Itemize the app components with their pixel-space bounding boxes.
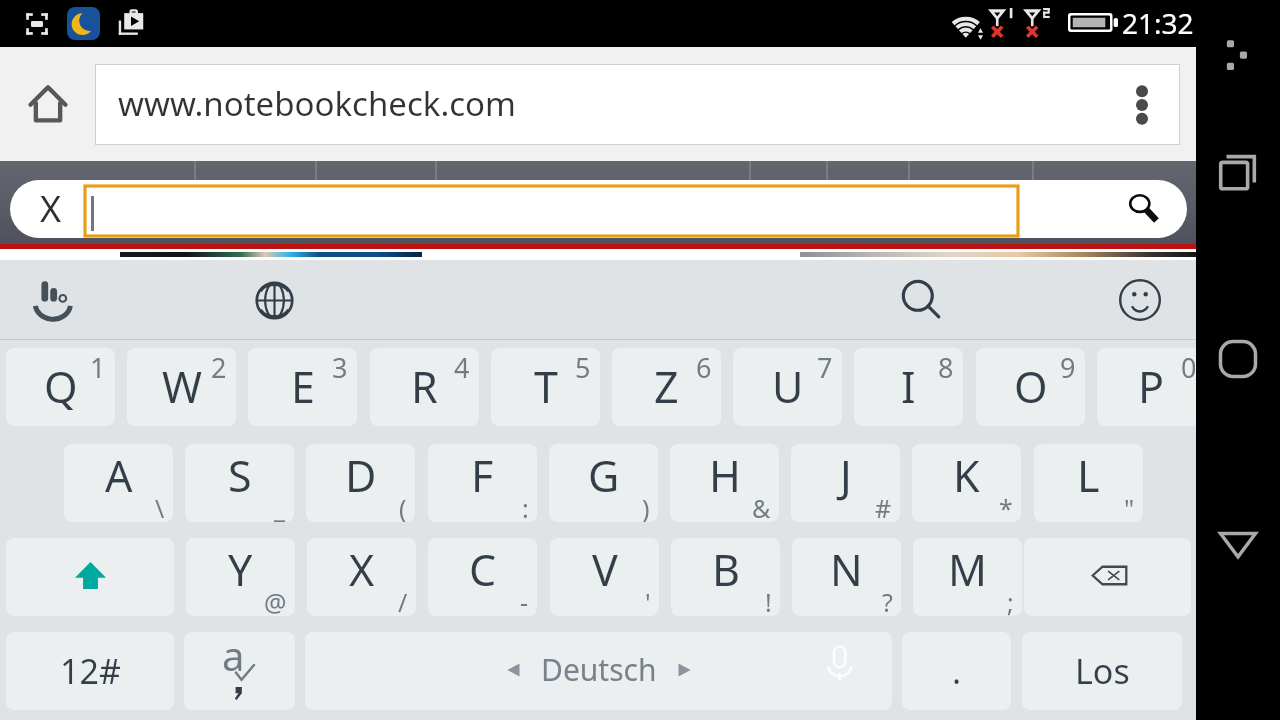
- staticText: 8: [938, 349, 954, 386]
- staticText: Y: [228, 540, 253, 599]
- staticText: 3: [332, 349, 348, 386]
- staticText: 6: [696, 349, 712, 386]
- button[interactable]: Backspace: [1024, 538, 1191, 616]
- staticText: L: [1077, 446, 1100, 505]
- button[interactable]: Back: [1213, 519, 1263, 569]
- button[interactable]: I: [854, 348, 963, 426]
- staticText: www.notebookcheck.com: [118, 81, 516, 126]
- button[interactable]: J: [791, 444, 900, 522]
- staticText: S: [228, 446, 252, 505]
- button[interactable]: a: [184, 632, 295, 710]
- button[interactable]: H: [670, 444, 779, 522]
- button[interactable]: A: [64, 444, 173, 522]
- staticText: G: [588, 446, 620, 505]
- staticText: 1: [90, 349, 106, 386]
- button[interactable]: .: [902, 632, 1011, 710]
- staticText: F: [471, 446, 494, 505]
- button[interactable]: Shift: [6, 538, 174, 616]
- staticText: N: [830, 540, 863, 599]
- button[interactable]: M: [913, 538, 1022, 616]
- staticText: Deutsch: [541, 649, 657, 690]
- button[interactable]: D: [306, 444, 415, 522]
- staticText: ): [642, 491, 650, 522]
- staticText: Z: [654, 357, 679, 416]
- staticText: ?: [882, 585, 893, 616]
- staticText: a: [222, 632, 245, 682]
- button[interactable]: K: [912, 444, 1021, 522]
- staticText: H: [709, 446, 741, 505]
- button[interactable]: www.notebookcheck.com: [96, 65, 1179, 144]
- button[interactable]: Y: [186, 538, 295, 616]
- button[interactable]: Home: [1213, 334, 1263, 384]
- staticText: \: [155, 491, 165, 522]
- staticText: T: [534, 357, 558, 416]
- button[interactable]: Z: [612, 348, 721, 426]
- button[interactable]: More options: [1127, 82, 1157, 128]
- staticText: I: [901, 357, 916, 416]
- staticText: P: [1138, 357, 1165, 416]
- button[interactable]: F: [428, 444, 537, 522]
- button[interactable]: G: [549, 444, 658, 522]
- button[interactable]: U: [733, 348, 842, 426]
- staticText: V: [592, 540, 618, 599]
- staticText: ;: [1007, 585, 1014, 616]
- staticText: C: [469, 540, 497, 599]
- button[interactable]: 12#: [6, 632, 174, 710]
- staticText: E: [291, 357, 315, 416]
- staticText: 4: [454, 349, 470, 386]
- staticText: :: [522, 491, 529, 522]
- staticText: @: [264, 585, 287, 616]
- staticText: #: [875, 491, 892, 522]
- button[interactable]: X: [307, 538, 416, 616]
- button[interactable]: L: [1034, 444, 1143, 522]
- staticText: /: [398, 585, 408, 616]
- staticText: ": [1124, 491, 1135, 522]
- staticText: D: [345, 446, 377, 505]
- staticText: 9: [1060, 349, 1076, 386]
- staticText: Q: [44, 357, 78, 416]
- staticText: 2: [211, 349, 227, 386]
- button[interactable]: TouchPal menu: [28, 272, 84, 328]
- button[interactable]: P: [1097, 348, 1206, 426]
- button[interactable]: Los: [1022, 632, 1182, 710]
- button[interactable]: Home: [22, 78, 74, 130]
- staticText: !: [765, 585, 772, 616]
- button[interactable]: Switch input method: [1217, 32, 1259, 74]
- button[interactable]: Search: [896, 274, 948, 326]
- staticText: 5: [575, 349, 591, 386]
- button[interactable]: B: [671, 538, 780, 616]
- button[interactable]: Deutsch: [305, 632, 892, 710]
- button[interactable]: O: [976, 348, 1085, 426]
- button[interactable]: W: [127, 348, 236, 426]
- button[interactable]: R: [370, 348, 479, 426]
- button[interactable]: Search: [1119, 185, 1167, 233]
- staticText: J: [840, 446, 852, 505]
- staticText: A: [105, 446, 133, 505]
- button[interactable]: C: [428, 538, 537, 616]
- staticText: *: [999, 491, 1013, 522]
- staticText: 12#: [60, 648, 121, 694]
- staticText: ': [645, 585, 651, 616]
- button[interactable]: N: [792, 538, 901, 616]
- staticText: -: [520, 585, 529, 616]
- button[interactable]: Language: [248, 274, 300, 326]
- staticText: X: [349, 540, 375, 599]
- button[interactable]: T: [491, 348, 600, 426]
- staticText: 0: [1181, 349, 1197, 386]
- staticText: &: [752, 491, 771, 522]
- staticText: K: [953, 446, 980, 505]
- button[interactable]: E: [248, 348, 357, 426]
- staticText: M: [948, 540, 988, 599]
- staticText: .: [952, 648, 962, 694]
- staticText: B: [712, 540, 740, 599]
- button[interactable]: Q: [6, 348, 115, 426]
- staticText: R: [411, 357, 438, 416]
- button[interactable]: Emoji: [1113, 274, 1165, 326]
- staticText: W: [162, 357, 202, 416]
- button[interactable]: V: [550, 538, 659, 616]
- staticText: X: [40, 184, 62, 233]
- button[interactable]: S: [185, 444, 294, 522]
- staticText: (: [399, 491, 407, 522]
- button[interactable]: Recent apps: [1214, 148, 1262, 196]
- staticText: U: [772, 357, 804, 416]
